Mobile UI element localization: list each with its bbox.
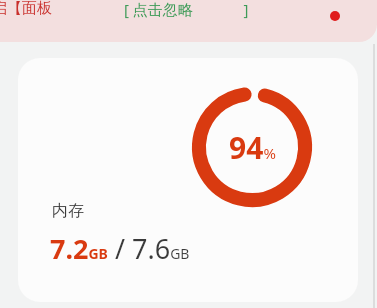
button[interactable]: 94%: [18, 58, 358, 302]
staticText: 94%: [229, 127, 276, 168]
button[interactable]: Status indicator: [325, 6, 345, 26]
button[interactable]: 启【面板: [0, 0, 377, 42]
staticText: [ 点击忽略 ]: [124, 0, 249, 19]
staticText: 内存: [52, 201, 84, 221]
staticText: 7.2GB / 7.6GB: [50, 230, 190, 267]
staticText: 启【面板: [0, 0, 52, 18]
button[interactable]: [ 点击忽略 ]: [124, 0, 256, 19]
